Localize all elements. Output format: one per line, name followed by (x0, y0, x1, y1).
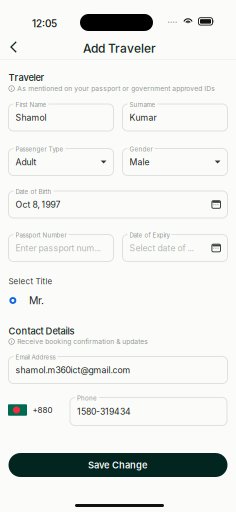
staticText: Email Address (15, 353, 55, 361)
staticText: As mentioned on your passport or governm… (17, 84, 215, 93)
button[interactable]: Save Change (8, 453, 227, 477)
staticText: Select Title (8, 276, 52, 286)
staticText: shamol.m360ict@gmail.com (15, 365, 130, 375)
staticText: +880 (32, 405, 52, 415)
button[interactable]: Male (122, 148, 227, 175)
button[interactable]: Select date of ... (122, 234, 227, 261)
staticText: Save Change (88, 459, 148, 471)
staticText: Date of Birth (15, 188, 51, 195)
staticText: Date of Expiry (129, 231, 169, 239)
staticText: Mr. (29, 294, 44, 307)
staticText: Passport Number (15, 231, 66, 239)
staticText: Oct 8, 1997 (15, 199, 60, 210)
staticText: Surname (129, 101, 155, 108)
staticText: Kumar (129, 112, 156, 123)
staticText: Male (129, 157, 149, 167)
staticText: Passenger Type (15, 145, 63, 153)
staticText: Gender (129, 145, 152, 153)
staticText: Add Traveler (83, 41, 156, 55)
staticText: Phone (77, 394, 97, 402)
staticText: Traveler (8, 72, 44, 83)
staticText: Select date of ... (129, 243, 193, 253)
button[interactable]: Country code +880 (8, 400, 52, 420)
staticText: Shamol (15, 112, 46, 123)
button[interactable]: Oct 8, 1997 (8, 191, 227, 218)
button[interactable]: Back (0, 32, 29, 62)
button[interactable]: Adult (8, 148, 113, 175)
staticText: 12:05 (32, 17, 57, 30)
staticText: 1580-319434 (77, 406, 131, 417)
staticText: First Name (15, 101, 46, 108)
staticText: Enter passport num... (15, 243, 100, 253)
button[interactable]: Mr. (9, 293, 79, 307)
staticText: Receive booking confirmation & updates (17, 337, 148, 346)
staticText: Adult (15, 157, 36, 167)
staticText: Contact Details (8, 325, 74, 337)
